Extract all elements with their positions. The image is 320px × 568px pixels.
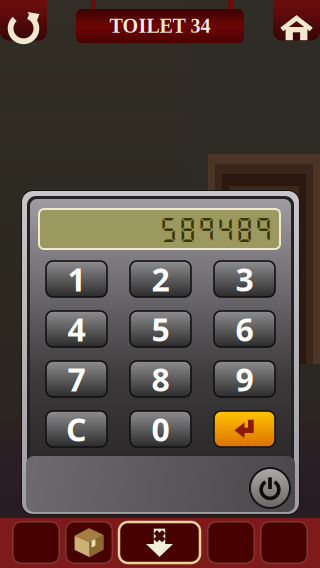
button[interactable]: 5 bbox=[130, 311, 191, 347]
button[interactable]: Drop item bbox=[119, 522, 200, 563]
staticText: 0 bbox=[151, 408, 169, 450]
button[interactable]: Home bbox=[273, 0, 320, 45]
button[interactable]: 6 bbox=[214, 311, 275, 347]
staticText: 2 bbox=[151, 258, 169, 300]
staticText: 7 bbox=[67, 358, 85, 400]
staticText: 3 bbox=[235, 258, 253, 300]
button[interactable]: Enter bbox=[214, 411, 275, 447]
button[interactable]: Empty inventory slot 1 bbox=[13, 522, 59, 563]
button[interactable]: C bbox=[46, 411, 107, 447]
button[interactable]: 3 bbox=[214, 261, 275, 297]
button[interactable]: Restart bbox=[0, 0, 47, 45]
button[interactable]: 4 bbox=[46, 311, 107, 347]
button[interactable]: 2 bbox=[130, 261, 191, 297]
staticText: 4 bbox=[67, 308, 85, 350]
button[interactable]: 0 bbox=[130, 411, 191, 447]
button[interactable]: 7 bbox=[46, 361, 107, 397]
staticText: 5 bbox=[151, 308, 169, 350]
button[interactable]: Power bbox=[250, 468, 290, 508]
button[interactable]: Empty inventory slot 4 bbox=[208, 522, 254, 563]
button[interactable]: TOILET 34 bbox=[76, 9, 244, 43]
staticText: 8 bbox=[151, 358, 169, 400]
button[interactable]: 8 bbox=[130, 361, 191, 397]
button[interactable]: Wooden crate bbox=[66, 522, 112, 563]
staticText: 6 bbox=[235, 308, 253, 350]
button[interactable]: Empty inventory slot 5 bbox=[261, 522, 307, 563]
button[interactable]: 1 bbox=[46, 261, 107, 297]
staticText: C bbox=[66, 408, 87, 450]
staticText: 9 bbox=[235, 358, 253, 400]
staticText: TOILET 34 bbox=[109, 15, 210, 37]
staticText: 589489 bbox=[159, 213, 273, 244]
staticText: 1 bbox=[67, 258, 85, 300]
button[interactable]: 9 bbox=[214, 361, 275, 397]
